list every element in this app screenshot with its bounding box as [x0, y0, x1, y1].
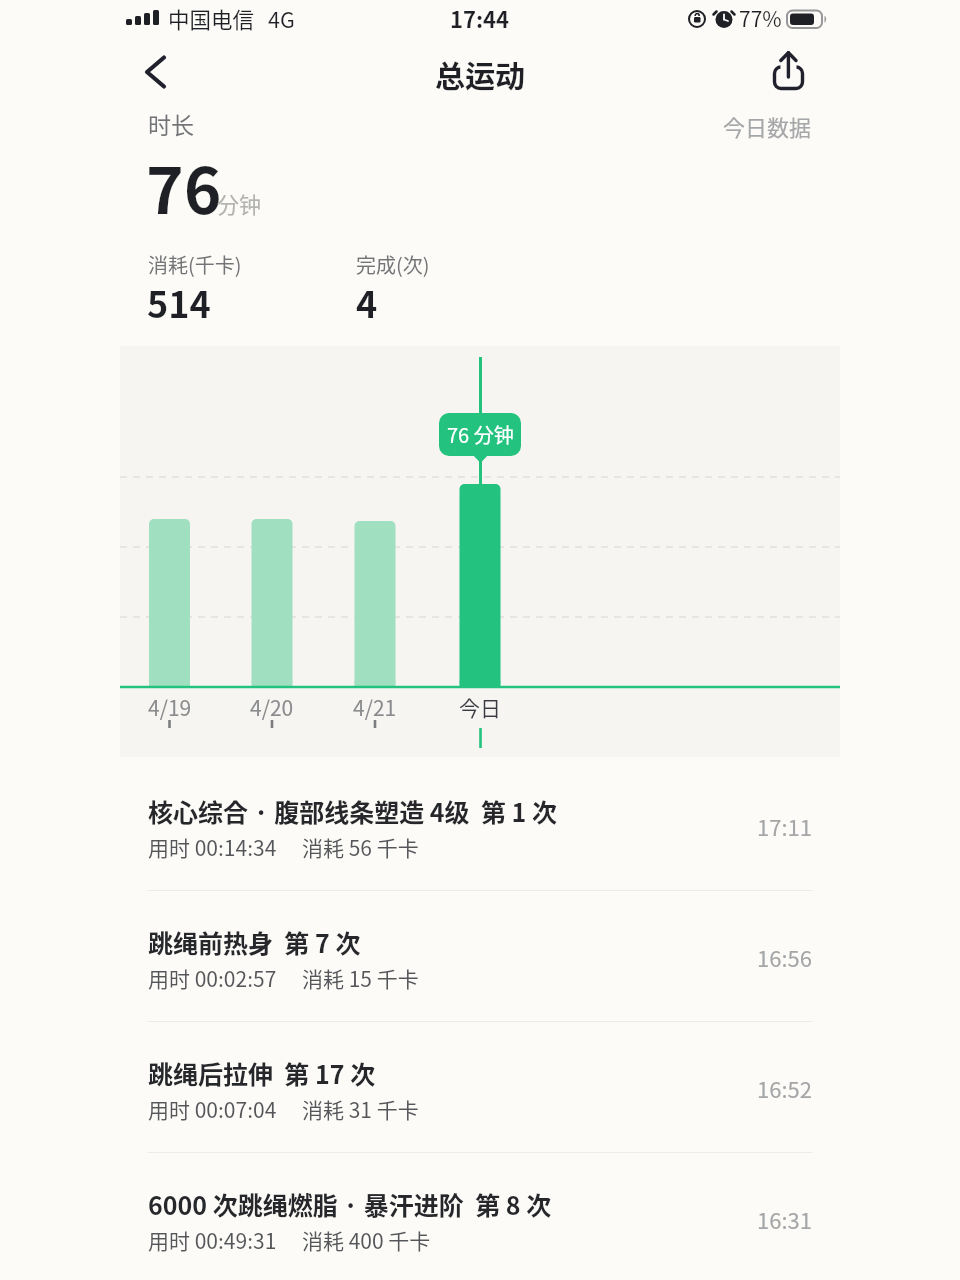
staticText: 消耗 56 千卡 [302, 832, 419, 862]
staticText: 分钟 [217, 187, 262, 219]
staticText: 16:52 [757, 1072, 812, 1104]
staticText: 今日 [459, 692, 501, 722]
staticText: 时长 [148, 107, 194, 140]
staticText: 跳绳前热身 第 7 次 [148, 924, 361, 960]
button[interactable]: 核心综合 · 腹部线条塑造 4级 第 1 次 [0, 760, 960, 891]
staticText: 中国电信 [168, 3, 255, 34]
staticText: 77% [739, 3, 782, 33]
button[interactable] [130, 48, 182, 100]
staticText: 514 [147, 276, 211, 328]
staticText: 6000 次跳绳燃脂 · 暴汗进阶 第 8 次 [148, 1186, 552, 1222]
staticText: 4/21 [353, 692, 397, 722]
staticText: 4/19 [148, 692, 192, 722]
button[interactable] [762, 44, 816, 100]
staticText: 用时 00:07:04 [148, 1094, 277, 1124]
staticText: 完成(次) [356, 250, 430, 279]
button[interactable]: 跳绳后拉伸 第 17 次 [0, 1022, 960, 1153]
staticText: 消耗 31 千卡 [302, 1094, 419, 1124]
staticText: 核心综合 · 腹部线条塑造 4级 第 1 次 [148, 793, 558, 829]
staticText: 76 分钟 [447, 420, 514, 449]
staticText: 16:56 [757, 941, 812, 973]
staticText: 16:31 [757, 1203, 812, 1235]
staticText: 17:44 [450, 2, 510, 34]
staticText: 17:11 [757, 810, 812, 842]
staticText: 用时 00:14:34 [148, 832, 277, 862]
staticText: 用时 00:02:57 [148, 963, 277, 993]
staticText: 用时 00:49:31 [148, 1225, 277, 1255]
staticText: 4/20 [250, 692, 294, 722]
staticText: 总运动 [435, 52, 525, 95]
staticText: 4G [268, 3, 295, 34]
staticText: 跳绳后拉伸 第 17 次 [148, 1055, 376, 1091]
button[interactable]: 6000 次跳绳燃脂 · 暴汗进阶 第 8 次 [0, 1153, 960, 1280]
button[interactable]: 76 分钟 [439, 413, 521, 456]
staticText: 今日数据 [723, 110, 812, 142]
button[interactable]: 跳绳前热身 第 7 次 [0, 891, 960, 1022]
staticText: 消耗(千卡) [148, 250, 242, 279]
staticText: 消耗 15 千卡 [302, 963, 419, 993]
staticText: 4 [356, 276, 378, 328]
staticText: 消耗 400 千卡 [302, 1225, 431, 1255]
staticText: 76 [146, 140, 222, 233]
